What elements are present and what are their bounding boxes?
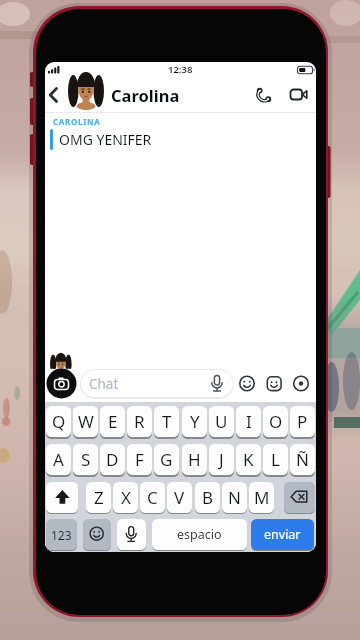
staticText: Y: [190, 410, 200, 433]
button[interactable]: M: [249, 482, 274, 513]
staticText: OMG YENIFER: [59, 130, 152, 149]
button[interactable]: D: [100, 444, 125, 475]
staticText: I: [246, 410, 252, 433]
staticText: 123: [51, 527, 72, 543]
staticText: O: [269, 410, 283, 433]
button[interactable]: enviar: [251, 519, 314, 550]
button[interactable]: Ñ: [290, 444, 315, 475]
staticText: P: [297, 410, 308, 433]
button[interactable]: [83, 519, 111, 550]
button[interactable]: A: [46, 444, 71, 475]
button[interactable]: [46, 368, 77, 399]
button[interactable]: T: [154, 406, 179, 437]
staticText: L: [271, 448, 280, 471]
staticText: X: [121, 486, 131, 509]
staticText: D: [106, 448, 119, 471]
staticText: CAROLINA: [53, 116, 101, 125]
button[interactable]: Y: [182, 406, 207, 437]
staticText: U: [215, 410, 228, 433]
staticText: C: [147, 486, 158, 509]
staticText: H: [188, 448, 201, 471]
button[interactable]: 123: [46, 519, 77, 550]
button[interactable]: [45, 84, 67, 106]
staticText: Carolina: [111, 84, 180, 106]
button[interactable]: R: [127, 406, 152, 437]
staticText: J: [219, 448, 224, 471]
button[interactable]: Q: [46, 406, 71, 437]
button[interactable]: espacio: [152, 519, 247, 550]
button[interactable]: [117, 519, 146, 550]
staticText: N: [228, 486, 241, 509]
staticText: enviar: [264, 526, 301, 543]
button[interactable]: V: [167, 482, 192, 513]
button[interactable]: N: [222, 482, 247, 513]
button[interactable]: C: [140, 482, 165, 513]
button[interactable]: G: [154, 444, 179, 475]
button[interactable]: H: [182, 444, 207, 475]
staticText: F: [135, 448, 144, 471]
staticText: Chat: [89, 375, 119, 393]
staticText: T: [162, 410, 172, 433]
button[interactable]: X: [113, 482, 138, 513]
button[interactable]: P: [290, 406, 315, 437]
staticText: Z: [94, 486, 104, 509]
button[interactable]: S: [73, 444, 98, 475]
button[interactable]: F: [127, 444, 152, 475]
button[interactable]: [286, 83, 311, 107]
button[interactable]: [292, 374, 310, 393]
staticText: 12:38: [168, 63, 193, 76]
staticText: Q: [52, 410, 66, 433]
staticText: K: [243, 448, 254, 471]
button[interactable]: E: [100, 406, 125, 437]
button[interactable]: [265, 374, 283, 393]
staticText: W: [78, 410, 94, 433]
button[interactable]: OMG YENIFER: [59, 129, 152, 150]
staticText: V: [174, 486, 185, 509]
button[interactable]: [252, 83, 277, 107]
button[interactable]: K: [236, 444, 261, 475]
staticText: E: [108, 410, 118, 433]
button[interactable]: L: [263, 444, 288, 475]
staticText: A: [53, 448, 64, 471]
button[interactable]: W: [73, 406, 98, 437]
button[interactable]: [80, 369, 234, 399]
button[interactable]: U: [209, 406, 234, 437]
button[interactable]: Z: [86, 482, 111, 513]
button[interactable]: B: [195, 482, 220, 513]
button[interactable]: [46, 482, 78, 513]
staticText: espacio: [177, 526, 222, 543]
staticText: Ñ: [296, 448, 309, 471]
staticText: M: [254, 486, 270, 509]
staticText: R: [134, 410, 145, 433]
button[interactable]: [284, 482, 315, 513]
staticText: B: [202, 486, 214, 509]
staticText: S: [81, 448, 91, 471]
button[interactable]: O: [263, 406, 288, 437]
button[interactable]: I: [236, 406, 261, 437]
staticText: G: [160, 448, 173, 471]
button[interactable]: J: [209, 444, 234, 475]
button[interactable]: [238, 374, 256, 393]
